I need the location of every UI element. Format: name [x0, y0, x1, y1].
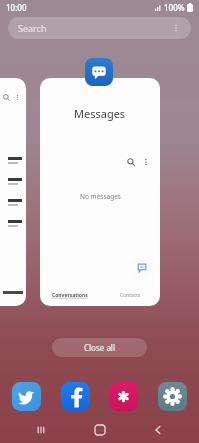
button[interactable] — [40, 78, 160, 306]
button[interactable] — [0, 78, 26, 306]
staticText: Conversations — [52, 292, 88, 299]
staticText: Contacts — [120, 292, 141, 299]
button[interactable]: Contacts — [100, 284, 160, 306]
button[interactable]: Facebook — [61, 382, 90, 411]
button[interactable]: Conversations — [40, 284, 100, 306]
button[interactable]: Search — [8, 17, 191, 39]
staticText: 100% — [164, 2, 185, 13]
staticText: Close all — [84, 342, 115, 353]
button[interactable]: Recents — [24, 417, 58, 443]
button[interactable]: New conversation — [131, 257, 152, 278]
button[interactable]: Close all — [52, 338, 147, 357]
button[interactable]: Home — [83, 417, 117, 443]
button[interactable]: Twitter — [12, 382, 41, 411]
button[interactable]: Settings — [158, 382, 187, 411]
other: More options — [171, 23, 181, 33]
staticText: Search — [18, 22, 47, 34]
button[interactable]: App — [109, 382, 138, 411]
staticText: Messages — [74, 106, 126, 121]
button[interactable]: Back — [141, 417, 175, 443]
staticText: No messages — [80, 192, 121, 201]
button[interactable]: More options — [140, 156, 152, 168]
staticText: 10:00 — [6, 2, 27, 13]
button[interactable]: Search messages — [125, 156, 137, 168]
